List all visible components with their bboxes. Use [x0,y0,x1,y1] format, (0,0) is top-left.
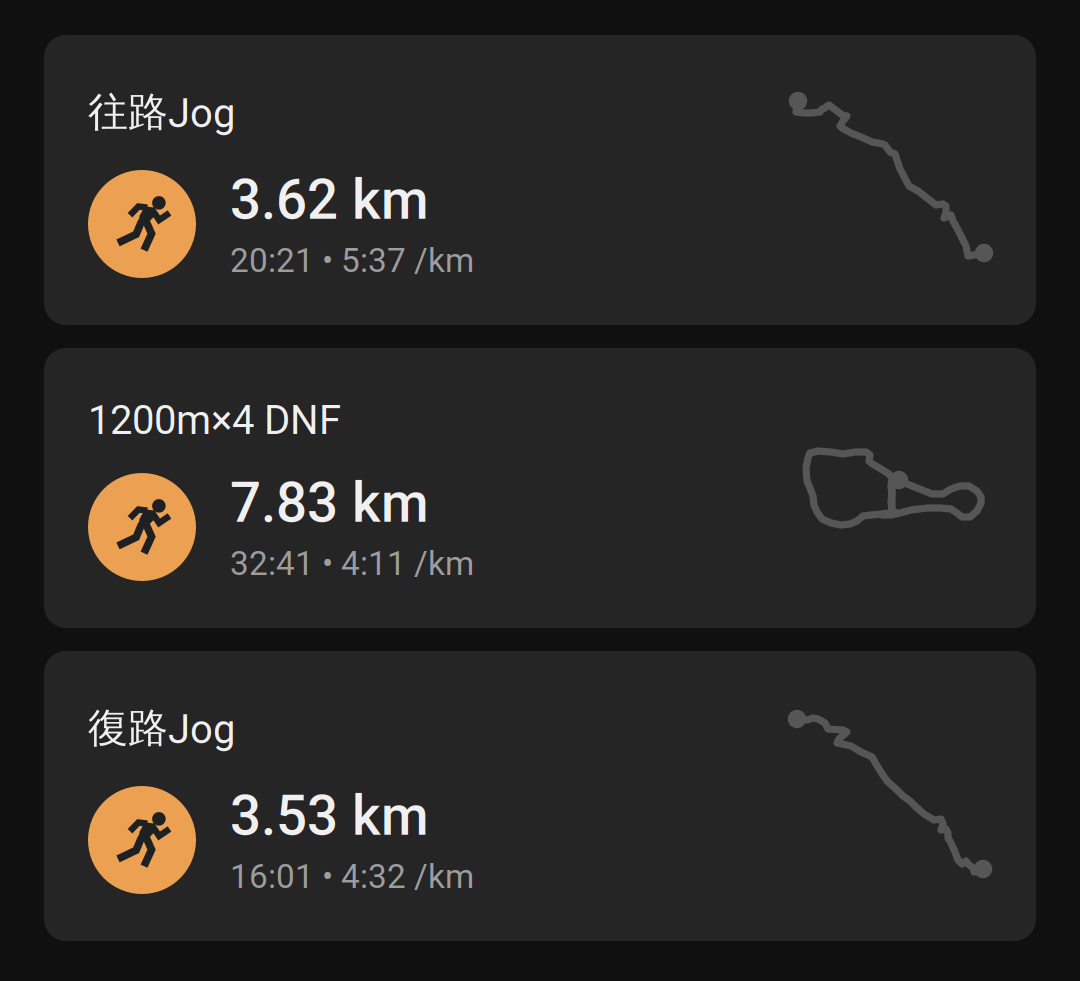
staticText: 3.53 km [230,784,429,848]
staticText: 復路Jog [88,703,235,753]
staticText: 7.83 km [230,471,429,535]
staticText: 20:21 • 5:37 /km [230,241,474,280]
staticText: 往路Jog [88,87,235,137]
staticText: 3.62 km [230,168,429,232]
staticText: 1200m×4 DNF [88,397,341,444]
staticText: 16:01 • 4:32 /km [230,857,474,896]
staticText: 32:41 • 4:11 /km [230,544,474,583]
button[interactable]: 往路Jog [44,35,1036,325]
button[interactable]: 復路Jog [44,651,1036,941]
button[interactable]: 1200m×4 DNF [44,348,1036,628]
